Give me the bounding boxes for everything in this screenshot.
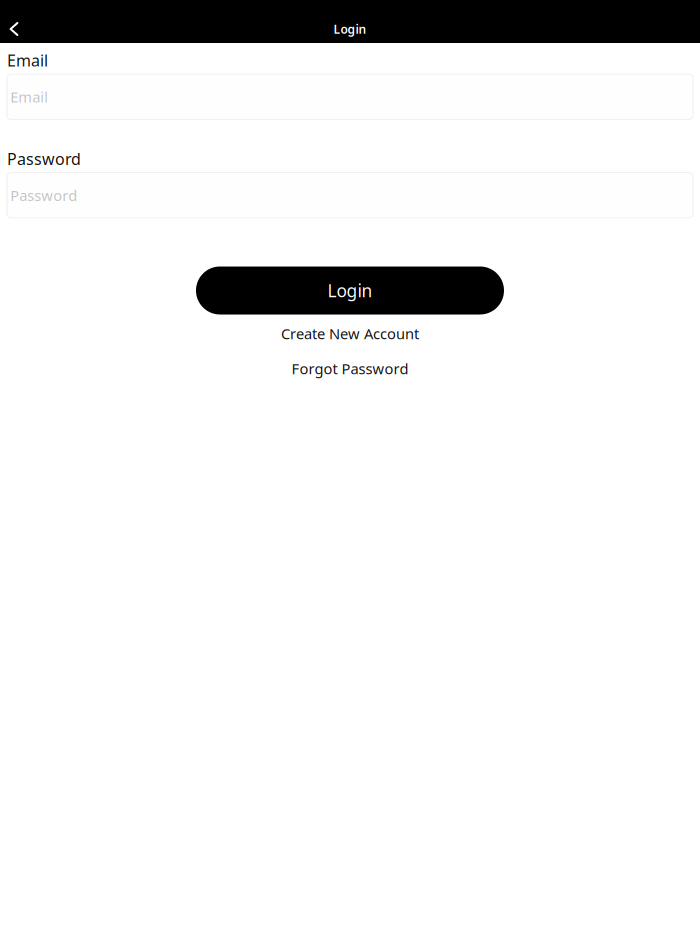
button[interactable]: Back	[0, 15, 28, 43]
staticText: Login	[333, 21, 366, 37]
button[interactable]: Login	[196, 266, 504, 314]
staticText: Create New Account	[281, 324, 419, 343]
staticText: Forgot Password	[291, 359, 408, 378]
staticText: Password	[7, 148, 81, 169]
staticText: Email	[7, 50, 48, 71]
button[interactable]: Email	[7, 74, 693, 119]
button[interactable]: Create New Account	[281, 320, 419, 346]
button[interactable]: Forgot Password	[291, 355, 408, 381]
staticText: Email	[10, 87, 48, 107]
staticText: Login	[327, 279, 372, 302]
staticText: Password	[10, 185, 77, 205]
button[interactable]: Password	[7, 172, 693, 218]
